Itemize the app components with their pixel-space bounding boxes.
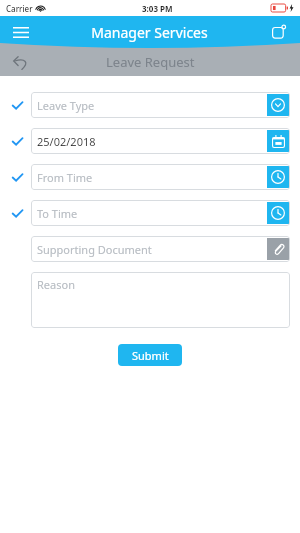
- button[interactable]: Back: [8, 49, 34, 75]
- button[interactable]: To Time: [31, 200, 290, 226]
- button[interactable]: Pick time: [267, 166, 289, 188]
- staticText: Supporting Document: [37, 242, 152, 257]
- button[interactable]: Reason: [31, 272, 290, 328]
- button[interactable]: New request: [266, 19, 292, 45]
- staticText: Carrier: [6, 3, 33, 14]
- staticText: Leave Type: [37, 98, 95, 113]
- staticText: Reason: [37, 277, 75, 292]
- button[interactable]: Attach document: [267, 238, 289, 260]
- staticText: To Time: [37, 206, 78, 221]
- staticText: From Time: [37, 170, 93, 185]
- staticText: Manager Services: [91, 23, 208, 42]
- button[interactable]: 25/02/2018: [31, 128, 290, 154]
- staticText: Leave Request: [106, 53, 195, 71]
- staticText: 25/02/2018: [37, 134, 96, 149]
- staticText: Submit: [132, 348, 169, 363]
- button[interactable]: Pick date: [267, 130, 289, 152]
- button[interactable]: Supporting Document: [31, 236, 290, 262]
- button[interactable]: Leave Type: [31, 92, 290, 118]
- button[interactable]: Pick time: [267, 202, 289, 224]
- button[interactable]: Menu: [8, 19, 34, 45]
- button[interactable]: Open list: [267, 94, 289, 116]
- button[interactable]: From Time: [31, 164, 290, 190]
- button[interactable]: Submit: [118, 344, 182, 366]
- staticText: 3:03 PM: [142, 3, 173, 14]
